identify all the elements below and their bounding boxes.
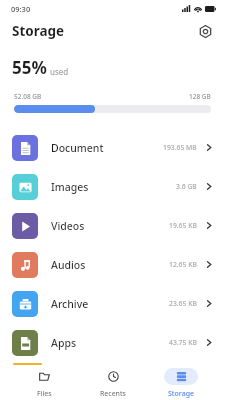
staticText: 3.6 GB — [176, 182, 197, 191]
staticText: 52.08 GB — [14, 92, 42, 101]
staticText: Storage — [12, 22, 65, 40]
staticText: 55% — [12, 56, 47, 79]
staticText: Images — [51, 180, 176, 194]
staticText: Recents — [100, 389, 126, 399]
staticText: used — [50, 66, 69, 77]
button[interactable]: Files — [19, 367, 69, 400]
staticText: Audios — [51, 258, 169, 272]
staticText: 193.65 MB — [163, 143, 197, 152]
staticText: 23.65 KB — [169, 299, 197, 308]
staticText: Apps — [51, 336, 169, 350]
button[interactable]: Document — [0, 128, 225, 167]
staticText: 19.65 KB — [169, 221, 197, 230]
button[interactable]: Apps — [0, 323, 225, 362]
button[interactable]: Archive — [0, 284, 225, 323]
button[interactable]: Audios — [0, 245, 225, 284]
staticText: Videos — [51, 219, 169, 233]
staticText: Document — [51, 141, 163, 155]
button[interactable]: Videos — [0, 206, 225, 245]
staticText: 12.65 KB — [169, 260, 197, 269]
staticText: Storage — [168, 389, 194, 399]
staticText: 09:30 — [11, 4, 31, 14]
staticText: Files — [37, 389, 52, 399]
button[interactable]: Images — [0, 167, 225, 206]
staticText: 43.75 KB — [169, 338, 197, 347]
button[interactable]: Settings — [195, 21, 215, 41]
staticText: 128 GB — [189, 92, 211, 101]
staticText: Archive — [51, 297, 169, 311]
button[interactable]: Recents — [88, 367, 138, 400]
button[interactable]: Storage — [156, 367, 206, 400]
